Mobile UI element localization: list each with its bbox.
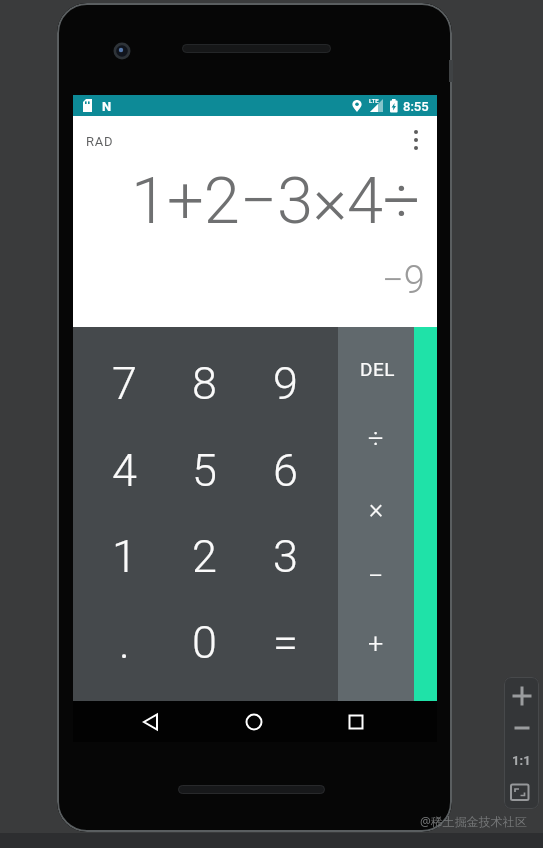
staticText: LTE (369, 97, 379, 104)
button[interactable] (339, 705, 373, 739)
button[interactable]: 1 (84, 514, 164, 598)
staticText: @稀土掘金技术社区 (420, 813, 527, 829)
button[interactable]: ÷ (338, 406, 414, 472)
staticText: . (119, 616, 130, 669)
staticText: × (369, 493, 384, 525)
button[interactable] (504, 680, 539, 712)
staticText: 6 (273, 444, 298, 497)
button[interactable]: 1:1 (504, 744, 539, 776)
button[interactable]: DEL (340, 336, 416, 402)
staticText: 3 (273, 530, 298, 583)
staticText: 2 (192, 530, 217, 583)
staticText: RAD (86, 134, 114, 149)
button[interactable]: 4 (84, 428, 164, 512)
staticText: ÷ (368, 423, 384, 455)
button[interactable] (504, 712, 539, 744)
button[interactable] (237, 705, 271, 739)
button[interactable]: = (245, 600, 325, 684)
button[interactable]: 3 (245, 514, 325, 598)
staticText: + (368, 628, 384, 660)
button[interactable] (406, 128, 426, 152)
staticText: − (368, 560, 384, 592)
staticText: 1:1 (512, 753, 531, 768)
button[interactable]: × (338, 476, 414, 542)
button[interactable]: 5 (164, 428, 244, 512)
button[interactable] (134, 705, 168, 739)
button[interactable]: 0 (164, 600, 244, 684)
button[interactable]: − (338, 543, 414, 609)
staticText: 0 (192, 616, 217, 669)
button[interactable]: 9 (245, 341, 325, 425)
staticText: 8:55 (403, 99, 429, 114)
staticText: 1 (112, 530, 137, 583)
staticText: 9 (273, 357, 298, 410)
staticText: 1+2−3×4÷ (131, 163, 420, 239)
button[interactable]: 8 (164, 341, 244, 425)
button[interactable]: 7 (84, 341, 164, 425)
button[interactable]: + (338, 611, 414, 677)
button[interactable]: . (84, 600, 164, 684)
button[interactable] (504, 776, 539, 808)
button[interactable]: 2 (164, 514, 244, 598)
staticText: 5 (192, 444, 217, 497)
staticText: 7 (112, 357, 137, 410)
staticText: DEL (360, 358, 396, 380)
staticText: = (273, 616, 298, 669)
staticText: 8 (192, 357, 217, 410)
staticText: 4 (112, 444, 137, 497)
staticText: N (102, 99, 112, 114)
button[interactable]: 6 (245, 428, 325, 512)
staticText: −9 (382, 258, 425, 302)
